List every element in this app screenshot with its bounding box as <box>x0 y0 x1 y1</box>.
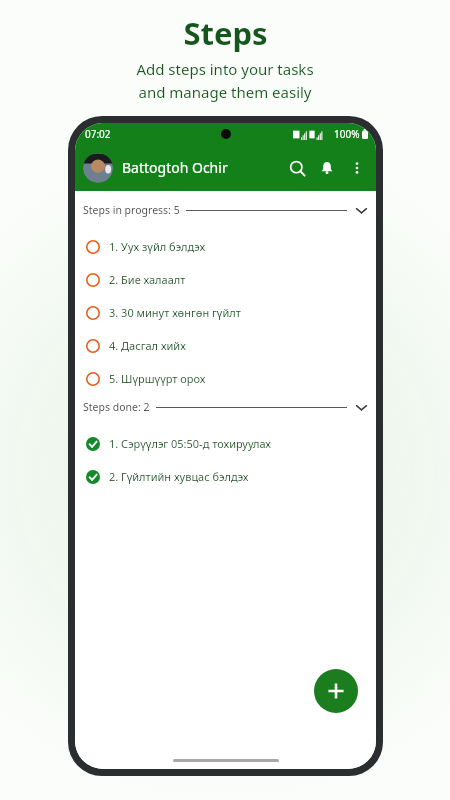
staticText: Steps done: 2 <box>83 400 150 414</box>
button[interactable]: 2. Гүйлтийн хувцас бэлдэх <box>75 460 376 493</box>
staticText: and manage them easily <box>138 82 312 102</box>
staticText: 2. Бие халаалт <box>109 272 186 287</box>
staticText: 100% <box>334 127 360 141</box>
staticText: 07:02 <box>85 127 111 141</box>
button[interactable]: Profile <box>83 153 113 183</box>
button[interactable]: Add step <box>314 669 358 713</box>
button[interactable]: Steps in progress: 5 <box>75 199 376 221</box>
button[interactable]: 5. Шүршүүрт орох <box>75 362 376 395</box>
staticText: Steps in progress: 5 <box>83 203 180 217</box>
button[interactable]: 1. Уух зүйл бэлдэх <box>75 230 376 263</box>
staticText: 5. Шүршүүрт орох <box>109 371 206 386</box>
button[interactable]: 1. Сэрүүлэг 05:50-д тохируулах <box>75 427 376 460</box>
button[interactable]: More options <box>342 153 372 183</box>
button[interactable]: 3. 30 минут хөнгөн гүйлт <box>75 296 376 329</box>
button[interactable]: Search <box>282 153 312 183</box>
staticText: 1. Сэрүүлэг 05:50-д тохируулах <box>109 436 271 451</box>
button[interactable]: Notifications <box>312 153 342 183</box>
staticText: 2. Гүйлтийн хувцас бэлдэх <box>109 469 249 484</box>
staticText: 4. Дасгал хийх <box>109 338 186 353</box>
button[interactable]: Steps done: 2 <box>75 396 376 418</box>
staticText: Steps <box>183 12 268 54</box>
staticText: Add steps into your tasks <box>136 59 314 79</box>
staticText: 3. 30 минут хөнгөн гүйлт <box>109 305 241 320</box>
staticText: Battogtoh Ochir <box>122 158 282 177</box>
button[interactable]: 4. Дасгал хийх <box>75 329 376 362</box>
button[interactable]: 2. Бие халаалт <box>75 263 376 296</box>
staticText: 1. Уух зүйл бэлдэх <box>109 239 206 254</box>
